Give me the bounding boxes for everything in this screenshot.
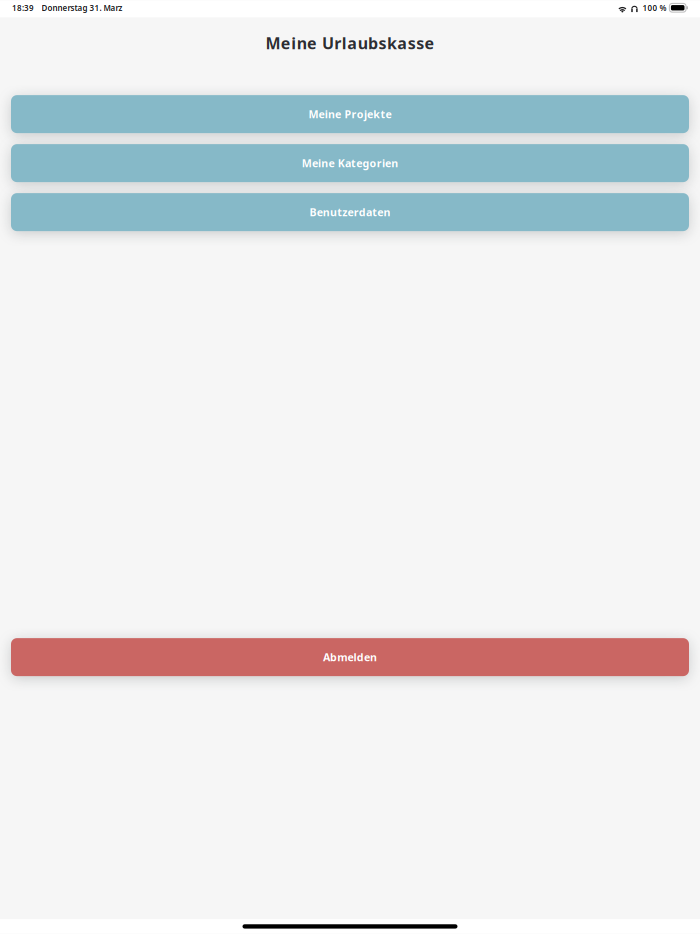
button[interactable]: Abmelden	[11, 638, 689, 676]
staticText: 18:39	[12, 2, 34, 13]
staticText: Meine Kategorien	[302, 156, 398, 170]
staticText: Donnerstag 31. März	[41, 2, 122, 13]
staticText: Abmelden	[323, 650, 377, 664]
staticText: Meine Urlaubskasse	[265, 32, 434, 54]
staticText: 100 %	[642, 2, 666, 13]
staticText: Meine Projekte	[308, 107, 392, 121]
staticText: Benutzerdaten	[309, 205, 390, 219]
button[interactable]: Meine Projekte	[11, 95, 689, 133]
button[interactable]: Meine Kategorien	[11, 144, 689, 182]
button[interactable]: Benutzerdaten	[11, 193, 689, 231]
